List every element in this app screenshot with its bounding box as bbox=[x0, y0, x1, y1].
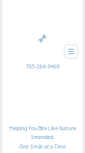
button[interactable]: Menu bbox=[63, 44, 78, 59]
staticText: Intended. bbox=[31, 133, 54, 140]
button[interactable]: 705-264-9469 bbox=[25, 63, 59, 70]
staticText: 705-264-9469 bbox=[25, 63, 59, 70]
staticText: One Smile at a Time bbox=[19, 143, 66, 150]
staticText: Helping You Bite Like Nature bbox=[9, 125, 76, 132]
button[interactable]: Call bbox=[38, 34, 47, 43]
